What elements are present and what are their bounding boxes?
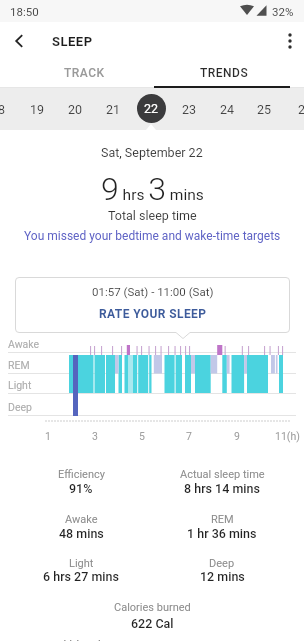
staticText: Total sleep time <box>108 208 197 223</box>
staticText: REM <box>211 513 234 526</box>
staticText: 32% <box>272 5 294 18</box>
button[interactable]: TRACK <box>16 58 152 87</box>
staticText: Light <box>8 379 32 391</box>
button[interactable]: 01:57 (Sat) - 11:00 (Sat) <box>15 277 290 333</box>
staticText: Deep <box>8 401 32 413</box>
staticText: Awake <box>65 513 98 526</box>
staticText: TRENDS <box>200 66 249 80</box>
button[interactable]: 23 <box>171 88 207 130</box>
button[interactable]: 20 <box>57 88 93 130</box>
staticText: TRACK <box>64 66 105 80</box>
staticText: 19 <box>30 102 45 117</box>
staticText: 01:57 (Sat) - 11:00 (Sat) <box>92 285 214 298</box>
staticText: 9 <box>234 430 240 442</box>
staticText: Deep <box>209 557 235 570</box>
button[interactable]: 22 <box>137 94 166 123</box>
button[interactable]: 21 <box>95 88 131 130</box>
staticText: 23 <box>182 102 197 117</box>
staticText: You missed your bedtime and wake-time ta… <box>24 229 281 243</box>
button[interactable]: 19 <box>19 88 55 130</box>
staticText: 91% <box>69 481 93 496</box>
staticText: 5 <box>139 430 145 442</box>
staticText: 18:50 <box>10 5 39 18</box>
staticText: 12 mins <box>200 569 245 584</box>
staticText: RATE YOUR SLEEP <box>99 307 207 321</box>
button[interactable]: 24 <box>209 88 245 130</box>
button[interactable]: TRENDS <box>152 58 296 87</box>
staticText: 1 hr 36 mins <box>187 526 257 541</box>
staticText: 21 <box>106 102 121 117</box>
staticText: 6 hrs 27 mins <box>43 569 119 584</box>
staticText: Sat, September 22 <box>101 145 203 160</box>
staticText: Calories burned <box>114 601 191 614</box>
staticText: Estimated blood oxygen <box>10 638 144 641</box>
button[interactable]: 8 <box>0 88 20 130</box>
staticText: 1 <box>45 430 51 442</box>
staticText: Light <box>69 557 94 570</box>
staticText: 3 <box>92 430 98 442</box>
button[interactable]: 2 <box>284 88 304 130</box>
staticText: 48 mins <box>59 526 104 541</box>
staticText: Efficiency <box>58 468 105 481</box>
staticText: 2 <box>298 102 304 117</box>
staticText: 22 <box>144 101 159 116</box>
staticText: 25 <box>257 102 272 117</box>
staticText: 622 Cal <box>131 616 174 631</box>
staticText: 11(h) <box>275 430 300 442</box>
staticText: REM <box>8 359 30 371</box>
staticText: 7 <box>186 430 192 442</box>
staticText: SLEEP <box>52 34 93 49</box>
staticText: 24 <box>220 102 235 117</box>
staticText: Actual sleep time <box>180 468 265 481</box>
staticText: 8 hrs 14 mins <box>184 481 260 496</box>
staticText: 9 hrs 3 mins <box>101 170 204 208</box>
staticText: 20 <box>68 102 83 117</box>
staticText: 8 <box>0 102 6 117</box>
button[interactable] <box>278 29 302 53</box>
button[interactable] <box>6 29 30 53</box>
button[interactable]: 25 <box>246 88 282 130</box>
staticText: Awake <box>8 338 40 350</box>
